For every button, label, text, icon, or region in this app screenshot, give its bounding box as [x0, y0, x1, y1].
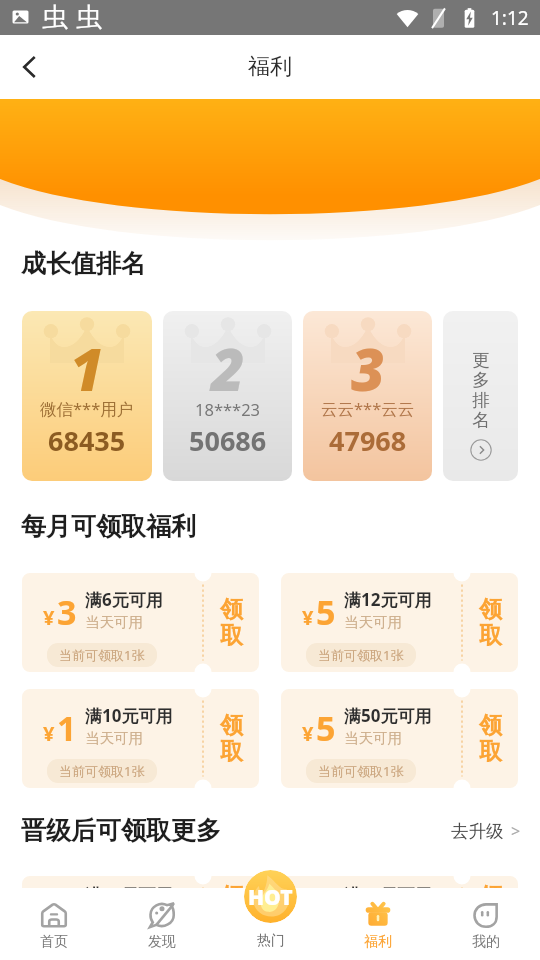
staticText: 2: [57, 884, 77, 930]
staticText: 去升级: [451, 820, 504, 842]
staticText: 满6元可用: [85, 588, 163, 611]
staticText: 热门: [257, 932, 285, 950]
staticText: 当前可领取1张: [318, 646, 404, 664]
button[interactable]: 1: [22, 311, 152, 481]
button[interactable]: ¥: [22, 689, 259, 788]
staticText: 当前可领取1张: [59, 762, 145, 780]
button[interactable]: 发现: [108, 888, 216, 960]
staticText: 当前可领取1张: [59, 646, 145, 664]
staticText: 领 取: [220, 595, 243, 650]
staticText: 领 取: [220, 882, 243, 937]
staticText: 8: [316, 884, 336, 930]
staticText: 领 取: [479, 711, 502, 766]
staticText: 68435: [48, 422, 126, 459]
staticText: ¥: [43, 720, 55, 747]
staticText: 更 多 排 名: [472, 349, 490, 431]
staticText: 2: [211, 329, 245, 408]
staticText: 虫: [42, 1, 68, 34]
staticText: 18***23: [195, 398, 261, 420]
button[interactable]: Back: [0, 38, 58, 96]
staticText: 1: [70, 329, 104, 408]
staticText: ¥: [43, 604, 55, 631]
staticText: 云云***云云: [321, 397, 415, 420]
staticText: 当天可用: [85, 729, 143, 747]
staticText: 发现: [148, 933, 176, 951]
button[interactable]: ¥: [22, 876, 259, 960]
staticText: 当天可用: [344, 729, 402, 747]
button[interactable]: ¥: [281, 573, 518, 672]
staticText: 3: [57, 589, 77, 635]
button[interactable]: 去升级: [451, 820, 521, 842]
staticText: 领 取: [479, 882, 502, 937]
staticText: 领 取: [220, 711, 243, 766]
button[interactable]: 2: [163, 311, 292, 481]
staticText: 50686: [189, 422, 267, 459]
staticText: 福利: [248, 53, 292, 81]
staticText: 晋级后可领取更多: [21, 815, 221, 846]
staticText: 当天可用: [85, 613, 143, 631]
staticText: 47968: [329, 422, 407, 459]
staticText: 满20元可用: [85, 883, 173, 906]
staticText: 3: [351, 329, 385, 408]
button[interactable]: 我的: [432, 888, 540, 960]
staticText: 首页: [40, 933, 68, 951]
staticText: 1: [57, 705, 77, 751]
staticText: 满12元可用: [344, 588, 432, 611]
staticText: 虫: [76, 1, 102, 34]
staticText: 满88元可用: [344, 883, 432, 906]
staticText: 当天可用: [344, 908, 402, 926]
staticText: 成长值排名: [21, 248, 146, 279]
button[interactable]: 3: [303, 311, 432, 481]
button[interactable]: Hot: [244, 888, 297, 959]
staticText: 领 取: [479, 595, 502, 650]
staticText: 微信***用户: [40, 397, 134, 420]
button[interactable]: ¥: [281, 876, 518, 960]
staticText: ¥: [302, 720, 314, 747]
staticText: 5: [316, 589, 336, 635]
button[interactable]: ¥: [22, 573, 259, 672]
staticText: 福利: [364, 933, 392, 951]
staticText: >: [511, 820, 521, 842]
staticText: ¥: [302, 604, 314, 631]
staticText: 每月可领取福利: [21, 511, 196, 542]
button[interactable]: 福利: [324, 888, 432, 960]
button[interactable]: ¥: [281, 689, 518, 788]
staticText: 我的: [472, 933, 500, 951]
staticText: 5: [316, 705, 336, 751]
staticText: 当前可领取1张: [318, 762, 404, 780]
staticText: 当天可用: [344, 613, 402, 631]
staticText: 1:12: [491, 5, 529, 31]
button[interactable]: 更 多 排 名: [443, 311, 518, 481]
staticText: 满10元可用: [85, 704, 173, 727]
button[interactable]: 首页: [0, 888, 108, 960]
staticText: 满50元可用: [344, 704, 432, 727]
staticText: ¥: [43, 899, 55, 926]
staticText: HOT: [248, 883, 293, 912]
